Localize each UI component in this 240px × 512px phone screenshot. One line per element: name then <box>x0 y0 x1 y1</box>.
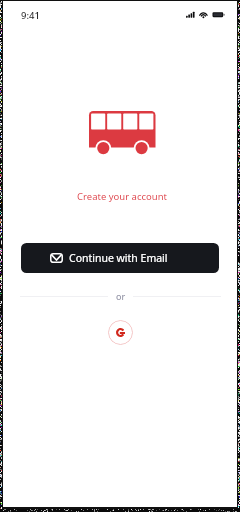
staticText: Create your account <box>5 190 239 203</box>
button[interactable]: Continue with Google <box>108 320 133 345</box>
staticText: or <box>116 290 126 302</box>
staticText: 9:41 <box>21 9 40 22</box>
button[interactable]: Continue with Email <box>21 243 219 273</box>
staticText: Continue with Email <box>69 251 168 265</box>
